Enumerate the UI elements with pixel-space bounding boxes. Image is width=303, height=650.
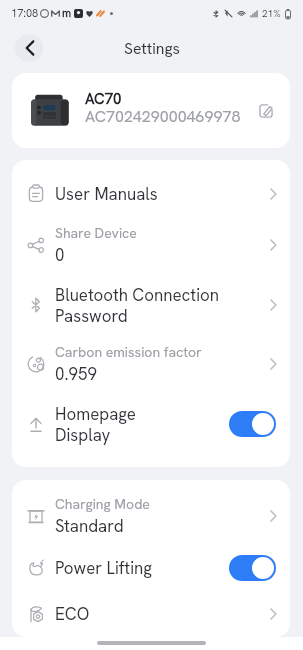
staticText: Power Lifting — [55, 557, 152, 579]
button[interactable]: Toggle Homepage Display — [229, 411, 276, 437]
staticText: User Manuals — [55, 183, 158, 205]
button[interactable]: Carbon emission factor — [12, 335, 290, 393]
staticText: 21% — [262, 7, 281, 20]
button[interactable]: Share Device — [12, 215, 290, 275]
staticText: 0.959 — [55, 363, 97, 385]
button[interactable]: ECO — [12, 590, 290, 637]
button[interactable]: Power Lifting — [12, 545, 290, 590]
button[interactable]: Back — [15, 34, 43, 62]
staticText: AC70 — [85, 89, 122, 109]
button[interactable]: Charging Mode — [12, 486, 290, 545]
button[interactable]: AC70 — [12, 73, 290, 148]
button[interactable]: Bluetooth Connection Password — [12, 275, 290, 335]
staticText: Settings — [124, 38, 180, 59]
staticText: ECO — [55, 603, 90, 625]
staticText: 0 — [55, 244, 65, 266]
staticText: 17:08 — [11, 6, 39, 20]
staticText: Standard — [55, 515, 124, 537]
staticText: Homepage Display — [55, 403, 136, 446]
button[interactable]: Rename device — [253, 98, 279, 124]
staticText: m — [62, 6, 72, 20]
staticText: Share Device — [55, 224, 137, 242]
staticText: Charging Mode — [55, 495, 150, 513]
button[interactable]: User Manuals — [12, 173, 290, 215]
staticText: Carbon emission factor — [55, 343, 202, 361]
staticText: AC702429000469978 — [85, 106, 241, 127]
button[interactable]: Toggle Power Lifting — [229, 555, 276, 581]
button[interactable]: Homepage Display — [12, 393, 290, 455]
staticText: Bluetooth Connection Password — [55, 284, 219, 327]
